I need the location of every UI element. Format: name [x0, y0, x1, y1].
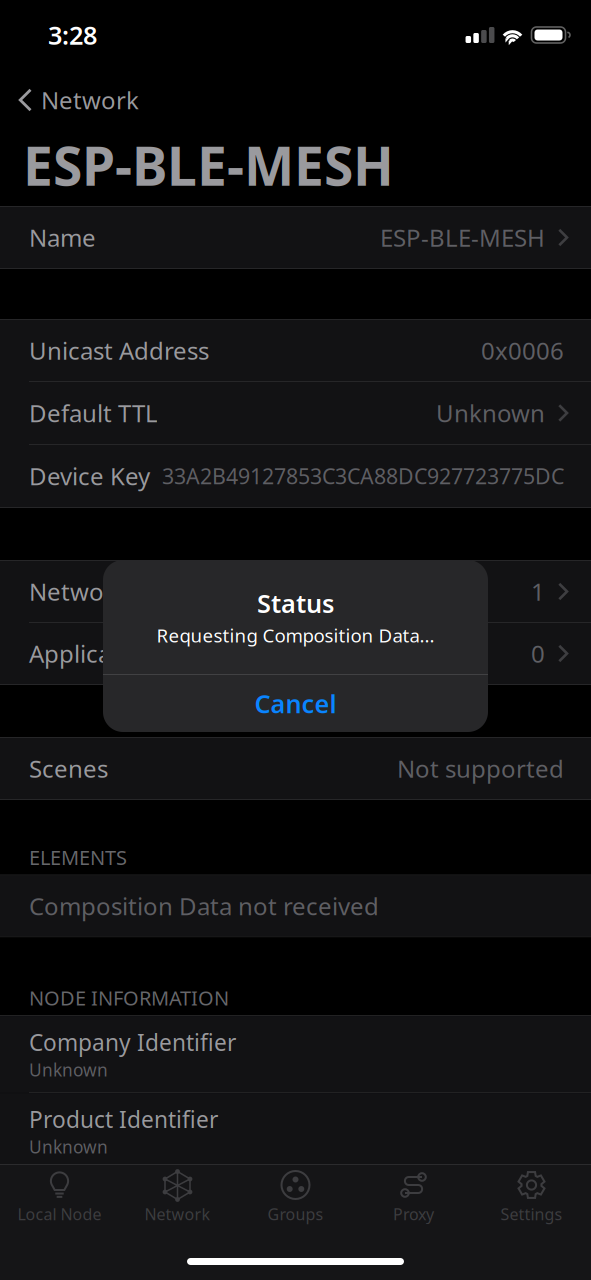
staticText: Proxy	[393, 1203, 434, 1225]
staticText: 1	[531, 576, 545, 607]
staticText: Name	[29, 222, 96, 253]
button[interactable]: Settings	[472, 1160, 590, 1231]
button[interactable]: Groups	[236, 1160, 354, 1231]
button[interactable]: Name	[0, 207, 591, 268]
staticText: 33A2B49127853C3CA88DC927723775DC	[162, 462, 564, 490]
staticText: Unknown	[436, 397, 545, 429]
staticText: Default TTL	[29, 397, 158, 429]
staticText: Composition Data not received	[29, 890, 379, 922]
staticText: ESP-BLE-MESH	[23, 130, 394, 200]
button[interactable]: Cancel	[103, 675, 488, 732]
staticText: Unknown	[29, 1135, 108, 1158]
button[interactable]: Network	[118, 1160, 236, 1231]
staticText: ESP-BLE-MESH	[380, 222, 545, 253]
staticText: Not supported	[397, 753, 564, 784]
staticText: Cancel	[254, 687, 336, 720]
button[interactable]: Network Keys	[0, 561, 591, 622]
staticText: Unicast Address	[29, 335, 209, 366]
staticText: 0	[531, 638, 545, 669]
staticText: Application Keys	[29, 638, 213, 669]
staticText: Network	[144, 1203, 210, 1225]
button[interactable]: Local Node	[0, 1160, 118, 1231]
staticText: Groups	[267, 1203, 323, 1225]
button[interactable]: Proxy	[354, 1160, 472, 1231]
button[interactable]: Application Keys	[0, 623, 591, 684]
staticText: Requesting Composition Data...	[156, 623, 434, 648]
button[interactable]: Network	[0, 85, 153, 115]
staticText: Device Key	[29, 460, 150, 492]
staticText: Network	[41, 84, 139, 116]
staticText: ELEMENTS	[29, 844, 127, 871]
staticText: Product Identifier	[29, 1104, 218, 1134]
staticText: 0x0006	[481, 335, 564, 366]
button[interactable]: Default TTL	[0, 382, 591, 444]
staticText: Network Keys	[29, 576, 184, 607]
staticText: Local Node	[17, 1203, 101, 1225]
staticText: Company Identifier	[29, 1027, 236, 1057]
staticText: Scenes	[29, 753, 108, 784]
staticText: 3:28	[48, 18, 97, 52]
staticText: Status	[257, 586, 334, 620]
staticText: NODE INFORMATION	[29, 985, 229, 1011]
staticText: Settings	[500, 1203, 562, 1225]
staticText: Unknown	[29, 1058, 108, 1081]
